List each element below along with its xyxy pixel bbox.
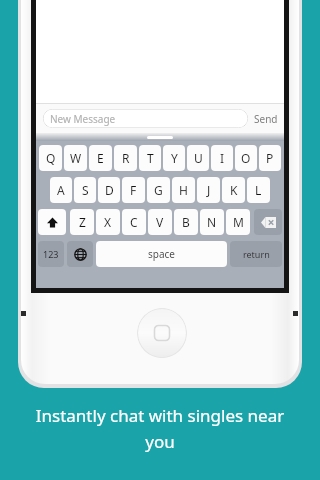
button[interactable]: G [147,177,170,203]
staticText: E [97,150,104,166]
button[interactable]: P [259,145,281,171]
staticText: V [156,214,164,230]
button[interactable]: R [114,145,137,171]
staticText: B [182,214,190,230]
staticText: K [230,182,238,198]
button[interactable]: B [174,209,198,235]
button[interactable]: S [74,177,96,203]
staticText: X [104,214,112,230]
staticText: return [243,248,270,260]
button[interactable]: Y [163,145,185,171]
staticText: O [241,150,251,166]
staticText: S [82,182,89,198]
staticText: Y [171,150,178,166]
staticText: R [122,150,130,166]
button[interactable]: return [230,241,282,267]
button[interactable]: space [96,241,227,267]
staticText: space [148,247,175,261]
button[interactable]: Home [137,308,187,358]
button[interactable]: O [235,145,257,171]
button[interactable]: 123 [38,241,64,267]
button[interactable]: V [148,209,172,235]
staticText: Z [79,214,86,230]
button[interactable]: Change keyboard [67,241,93,267]
staticText: P [266,150,274,166]
staticText: C [130,214,138,230]
staticText: 123 [43,248,59,260]
button[interactable]: F [122,177,145,203]
button[interactable]: E [89,145,112,171]
staticText: Send [254,112,278,126]
button[interactable]: M [226,209,250,235]
staticText: L [255,182,262,198]
staticText: New Message [50,112,116,126]
staticText: G [154,182,163,198]
staticText: N [207,214,217,230]
button[interactable]: W [64,145,87,171]
staticText: Q [46,150,56,166]
staticText: H [179,182,188,198]
staticText: Instantly chat with singles near you [19,404,301,453]
staticText: U [194,150,203,166]
staticText: W [70,150,82,166]
button[interactable]: New Message [43,109,248,128]
button[interactable]: Q [39,145,62,171]
staticText: T [147,150,154,166]
staticText: D [105,182,114,198]
button[interactable]: D [98,177,120,203]
button[interactable]: H [172,177,195,203]
staticText: M [233,214,244,230]
staticText: I [220,150,225,166]
button[interactable]: I [211,145,233,171]
staticText: J [207,182,211,198]
button[interactable]: U [187,145,209,171]
button[interactable]: L [247,177,270,203]
button[interactable]: K [222,177,245,203]
button[interactable]: T [139,145,161,171]
staticText: A [57,182,65,198]
button[interactable]: Z [70,209,94,235]
button[interactable]: C [122,209,146,235]
button[interactable]: Backspace [254,209,282,235]
button[interactable]: A [50,177,72,203]
staticText: F [130,182,137,198]
button[interactable]: N [200,209,224,235]
button[interactable]: X [96,209,120,235]
button[interactable]: Send [254,112,278,126]
button[interactable]: J [197,177,220,203]
button[interactable]: Shift [38,209,66,235]
